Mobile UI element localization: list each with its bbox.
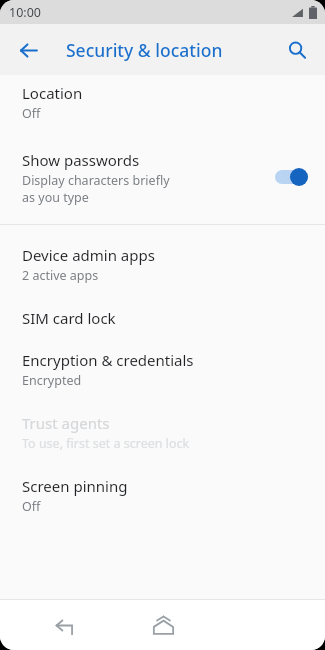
staticText: SIM card lock [22,308,116,328]
button[interactable]: Screen pinning [0,466,325,525]
button[interactable]: Encryption & credentials [0,342,325,403]
staticText: Off [22,498,41,515]
button[interactable]: Home [141,603,185,647]
staticText: Location [22,83,83,103]
button[interactable]: Navigate up [6,28,50,72]
button[interactable]: Trust agents [0,403,325,466]
staticText: To use, first set a screen lock [22,435,190,452]
button[interactable]: Show passwords toggle [269,159,313,195]
button[interactable]: Search [275,28,319,72]
button[interactable]: Show passwords [0,136,325,218]
staticText: Trust agents [22,413,110,433]
staticText: 2 active apps [22,267,99,284]
button[interactable]: Location [0,75,325,136]
staticText: Off [22,105,41,122]
staticText: Device admin apps [22,245,155,265]
button[interactable]: SIM card lock [0,298,325,342]
staticText: Security & location [66,38,223,62]
button[interactable]: Back [42,603,86,647]
staticText: Encrypted [22,372,82,389]
button[interactable]: Device admin apps [0,239,325,298]
staticText: Screen pinning [22,476,128,496]
staticText: Show passwords [22,150,140,170]
staticText: Display characters briefly as you type [22,172,170,206]
staticText: Encryption & credentials [22,350,194,370]
staticText: 10:00 [9,4,41,21]
